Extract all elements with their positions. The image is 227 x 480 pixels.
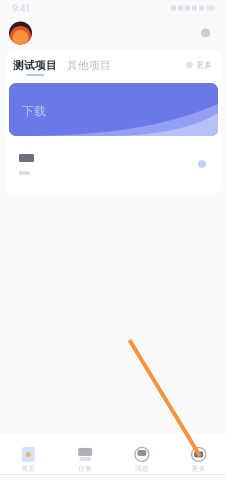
button[interactable]: Menu bbox=[197, 24, 214, 41]
button[interactable]: 测试项目 bbox=[13, 59, 57, 76]
staticText: 任务 bbox=[78, 464, 92, 473]
button[interactable]: Profile bbox=[9, 21, 32, 44]
button[interactable] bbox=[6, 136, 221, 189]
button[interactable]: 任务 bbox=[57, 447, 114, 474]
button[interactable]: 更多 bbox=[186, 59, 212, 70]
button[interactable]: 下载 bbox=[6, 80, 221, 136]
button[interactable]: 更多 bbox=[170, 447, 227, 474]
staticText: 首页 bbox=[21, 464, 35, 473]
button[interactable]: 首页 bbox=[0, 447, 57, 474]
staticText: 下载 bbox=[22, 104, 46, 119]
staticText: 测试项目 bbox=[13, 59, 57, 72]
staticText: 其他项目 bbox=[67, 59, 111, 72]
button[interactable]: 其他项目 bbox=[67, 59, 111, 76]
staticText: 更多 bbox=[192, 464, 206, 473]
button[interactable]: 消息 bbox=[113, 447, 170, 474]
staticText: 9:41 bbox=[12, 2, 30, 14]
staticText: 更多 bbox=[196, 60, 212, 70]
staticText: 消息 bbox=[135, 464, 149, 473]
